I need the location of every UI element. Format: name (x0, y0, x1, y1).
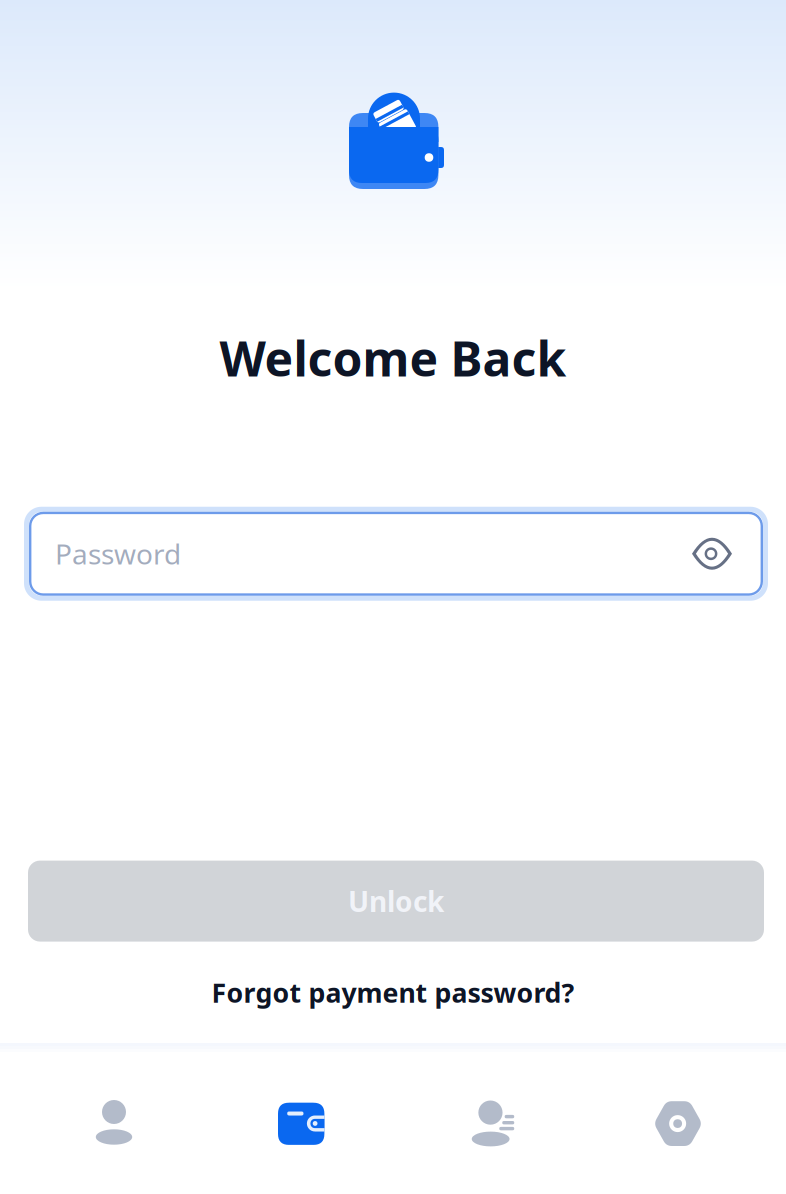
button[interactable]: Contacts (396, 1043, 584, 1194)
staticText: Welcome Back (219, 326, 566, 390)
button[interactable]: Show password (676, 512, 748, 596)
staticText: Unlock (348, 882, 444, 920)
staticText: Password (55, 535, 181, 572)
staticText: Forgot payment password? (211, 975, 574, 1010)
button[interactable]: Settings (584, 1043, 772, 1194)
button[interactable]: Wallet (208, 1043, 396, 1194)
button[interactable]: Forgot payment password? (211, 975, 574, 1010)
button[interactable]: Unlock (28, 861, 764, 942)
button[interactable]: Profile (20, 1043, 208, 1194)
